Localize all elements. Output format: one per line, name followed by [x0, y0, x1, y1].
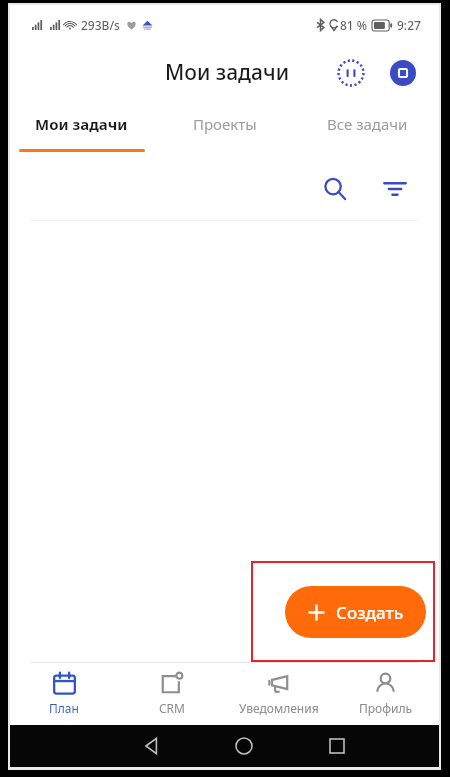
- button[interactable]: Мои задачи: [10, 100, 153, 158]
- button[interactable]: Создать: [285, 586, 426, 638]
- button[interactable]: План: [10, 663, 118, 725]
- staticText: Проекты: [193, 114, 257, 134]
- staticText: План: [49, 700, 79, 716]
- button[interactable]: Pause timer: [331, 53, 371, 93]
- button[interactable]: Home: [197, 725, 290, 767]
- button[interactable]: Stop timer: [383, 53, 423, 93]
- staticText: CRM: [159, 700, 185, 716]
- staticText: Мои задачи: [35, 114, 128, 134]
- staticText: 293B/s: [81, 17, 120, 33]
- staticText: 9:27: [397, 17, 421, 33]
- button[interactable]: Filter: [373, 167, 417, 211]
- button[interactable]: Search: [313, 167, 357, 211]
- button[interactable]: Все задачи: [296, 100, 439, 158]
- staticText: 81 %: [340, 17, 368, 33]
- button[interactable]: Back: [104, 725, 197, 767]
- staticText: Все задачи: [327, 114, 408, 134]
- button[interactable]: Уведомления: [225, 663, 332, 725]
- button[interactable]: Recent apps: [290, 725, 383, 767]
- staticText: Уведомления: [239, 700, 319, 716]
- staticText: Создать: [336, 601, 404, 624]
- staticText: Профиль: [359, 700, 413, 716]
- button[interactable]: Проекты: [153, 100, 296, 158]
- button[interactable]: Профиль: [332, 663, 439, 725]
- staticText: Мои задачи: [165, 58, 290, 87]
- button[interactable]: CRM: [118, 663, 225, 725]
